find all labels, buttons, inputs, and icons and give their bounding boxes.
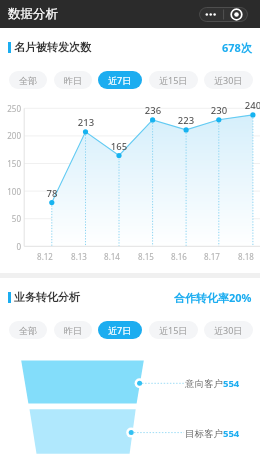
staticText: 近15日 (159, 324, 188, 336)
button[interactable]: 近30日 (204, 71, 253, 89)
button[interactable]: 近15日 (149, 71, 198, 89)
staticText: 150 (0, 158, 21, 169)
staticText: 678次 (222, 40, 252, 55)
staticText: 213 (70, 116, 102, 127)
staticText: 近7日 (108, 74, 132, 86)
staticText: 昨日 (64, 325, 82, 336)
button[interactable]: More options and close (199, 7, 248, 22)
staticText: 目标客户554 (185, 427, 240, 440)
button[interactable]: 近15日 (149, 321, 198, 339)
staticText: 100 (0, 186, 21, 197)
staticText: 意向客户554 (185, 377, 240, 390)
button[interactable]: 近7日 (98, 321, 142, 339)
staticText: 8.13 (63, 251, 95, 262)
staticText: 全部 (19, 75, 37, 86)
staticText: 昨日 (64, 75, 82, 86)
staticText: 8.15 (130, 251, 162, 262)
staticText: 78 (36, 187, 68, 198)
button[interactable]: 目标客户554 (185, 426, 240, 440)
button[interactable]: 昨日 (54, 321, 92, 339)
staticText: 8.17 (196, 251, 228, 262)
staticText: 8.14 (96, 251, 128, 262)
staticText: 8.16 (163, 251, 195, 262)
staticText: 合作转化率20% (174, 290, 252, 305)
button[interactable]: 意向客户554 (185, 376, 240, 390)
button[interactable]: 近30日 (204, 321, 253, 339)
button[interactable]: 昨日 (54, 71, 92, 89)
staticText: 8.12 (29, 251, 61, 262)
staticText: 近30日 (214, 74, 243, 86)
staticText: 8.18 (230, 251, 260, 262)
staticText: 50 (0, 213, 21, 224)
staticText: 250 (0, 103, 21, 114)
staticText: 200 (0, 130, 21, 141)
staticText: 近7日 (108, 324, 132, 336)
staticText: 0 (0, 241, 21, 252)
staticText: 165 (103, 140, 135, 151)
staticText: 240 (237, 99, 260, 110)
staticText: 业务转化分析 (14, 290, 80, 304)
button[interactable]: 近7日 (98, 71, 142, 89)
staticText: 近15日 (159, 74, 188, 86)
staticText: 名片被转发次数 (14, 40, 91, 54)
button[interactable]: 全部 (9, 71, 47, 89)
staticText: 全部 (19, 325, 37, 336)
staticText: 223 (170, 114, 202, 125)
button[interactable]: 全部 (9, 321, 47, 339)
staticText: 数据分析 (8, 6, 58, 22)
staticText: 236 (137, 104, 169, 115)
staticText: 近30日 (214, 324, 243, 336)
staticText: 230 (203, 104, 235, 115)
